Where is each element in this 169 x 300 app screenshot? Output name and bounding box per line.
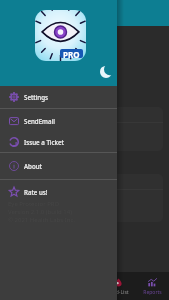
- button[interactable]: Settings: [0, 86, 117, 108]
- button[interactable]: Issue a Ticket: [0, 131, 117, 152]
- button[interactable]: Rate us!: [0, 181, 117, 203]
- button[interactable]: Reports: [135, 272, 169, 300]
- staticText: Rate us!: [24, 188, 48, 196]
- button[interactable]: About: [0, 154, 117, 178]
- button[interactable]: PRO: [35, 10, 86, 61]
- button[interactable]: [6, 107, 163, 151]
- staticText: Issue a Ticket: [24, 138, 64, 146]
- button[interactable]: Night mode: [100, 66, 112, 78]
- staticText: Settings: [24, 93, 49, 101]
- button[interactable]: Med-List: [101, 272, 135, 300]
- button[interactable]: SendEmail: [0, 110, 117, 132]
- staticText: PRO: [63, 49, 80, 58]
- button[interactable]: [6, 174, 163, 222]
- staticText: SendEmail: [24, 117, 55, 125]
- staticText: Reports: [143, 289, 162, 296]
- staticText: About: [24, 162, 42, 170]
- staticText: Med-List: [108, 289, 129, 296]
